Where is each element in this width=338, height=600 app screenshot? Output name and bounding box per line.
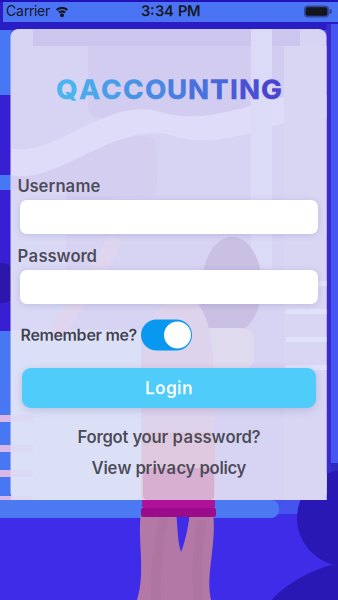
button[interactable]: View privacy policy bbox=[91, 458, 246, 478]
staticText: Carrier bbox=[6, 2, 50, 19]
staticText: N bbox=[239, 72, 260, 106]
staticText: Login bbox=[145, 377, 193, 398]
staticText: N bbox=[188, 72, 209, 106]
staticText: C bbox=[123, 72, 144, 106]
staticText: C bbox=[101, 72, 122, 106]
staticText: Password bbox=[17, 246, 96, 266]
staticText: View privacy policy bbox=[91, 458, 246, 478]
staticText: 3:34 PM bbox=[141, 2, 201, 20]
staticText: I bbox=[230, 72, 238, 106]
staticText: T bbox=[210, 72, 229, 106]
staticText: O bbox=[145, 72, 166, 106]
staticText: Remember me? bbox=[20, 325, 137, 345]
button[interactable] bbox=[141, 319, 192, 350]
staticText: Q bbox=[56, 72, 78, 106]
staticText: Forgot your password? bbox=[77, 427, 260, 447]
staticText: U bbox=[167, 72, 187, 106]
staticText: Username bbox=[17, 176, 100, 196]
button[interactable]: Forgot your password? bbox=[77, 427, 260, 447]
button[interactable]: Login bbox=[22, 368, 316, 408]
staticText: G bbox=[261, 72, 282, 106]
staticText: A bbox=[79, 72, 100, 106]
